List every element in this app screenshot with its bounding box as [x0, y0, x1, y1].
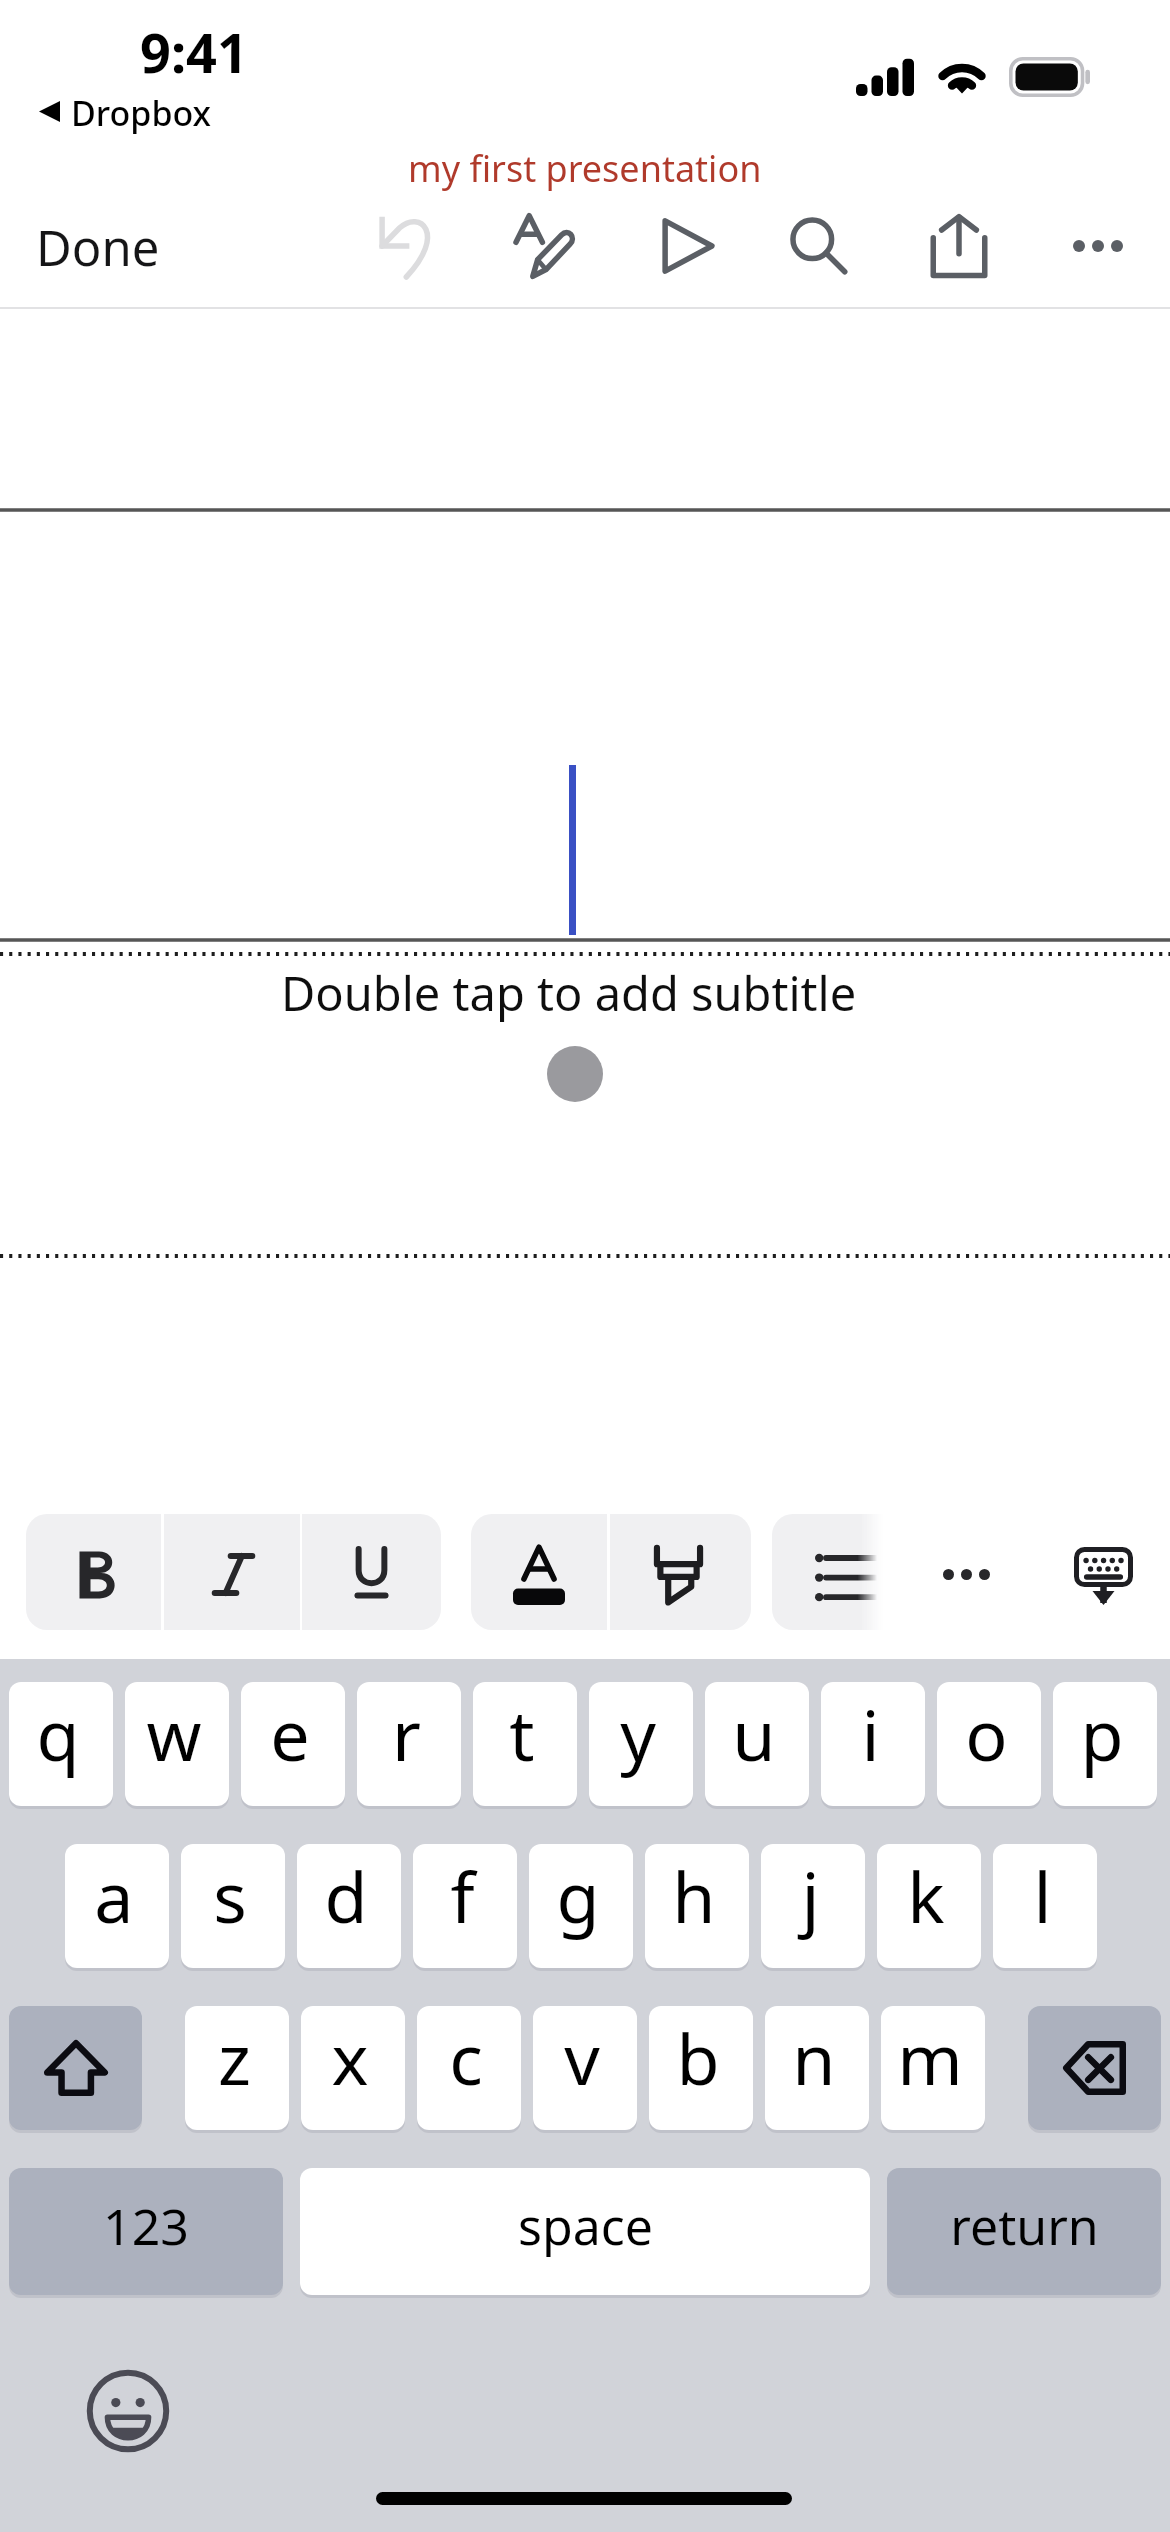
staticText: e	[270, 1686, 310, 1781]
button[interactable]: Shift	[9, 2006, 142, 2130]
button[interactable]: l	[993, 1844, 1097, 1968]
staticText: c	[449, 2010, 483, 2105]
button[interactable]: d	[297, 1844, 401, 1968]
button[interactable]: Underline	[302, 1514, 441, 1630]
staticText: m	[897, 2010, 963, 2105]
button[interactable]: g	[529, 1844, 633, 1968]
button[interactable]: i	[821, 1682, 925, 1806]
staticText: q	[36, 1686, 80, 1781]
staticText: x	[331, 2010, 369, 2105]
staticText: u	[732, 1686, 776, 1781]
staticText: w	[146, 1686, 202, 1781]
staticText: t	[509, 1686, 535, 1781]
button[interactable]: Done	[36, 206, 166, 288]
button[interactable]: Double tap to add subtitle	[281, 961, 857, 1025]
staticText: r	[392, 1686, 421, 1781]
staticText: Done	[36, 214, 160, 281]
button[interactable]: u	[705, 1682, 809, 1806]
staticText: z	[218, 2010, 251, 2105]
button[interactable]: More formatting	[916, 1514, 1018, 1630]
staticText: a	[94, 1848, 134, 1943]
button[interactable]: z	[185, 2006, 289, 2130]
button[interactable]: t	[473, 1682, 577, 1806]
staticText: g	[556, 1848, 600, 1943]
button[interactable]: p	[1053, 1682, 1157, 1806]
button[interactable]: Edit text	[502, 202, 590, 290]
button[interactable]: f	[413, 1844, 517, 1968]
button[interactable]: r	[357, 1682, 461, 1806]
button[interactable]: b	[649, 2006, 753, 2130]
button[interactable]: Emoji keyboard	[78, 2361, 178, 2461]
staticText: n	[792, 2010, 836, 2105]
button[interactable]: Bulleted list	[772, 1514, 883, 1630]
button[interactable]: Undo	[366, 202, 454, 290]
button[interactable]: More options	[1054, 202, 1142, 290]
staticText: p	[1080, 1686, 1124, 1781]
button[interactable]: v	[533, 2006, 637, 2130]
staticText: Dropbox	[71, 90, 212, 136]
button[interactable]: a	[65, 1844, 169, 1968]
staticText: h	[672, 1848, 716, 1943]
staticText: d	[324, 1848, 368, 1943]
button[interactable]: c	[417, 2006, 521, 2130]
staticText: space	[518, 2192, 653, 2260]
staticText: y	[620, 1686, 656, 1781]
button[interactable]: n	[765, 2006, 869, 2130]
button[interactable]: k	[877, 1844, 981, 1968]
button[interactable]: 123	[9, 2168, 283, 2295]
button[interactable]: x	[301, 2006, 405, 2130]
button[interactable]: Dropbox	[26, 85, 236, 141]
button[interactable]: o	[937, 1682, 1041, 1806]
staticText: my first presentation	[408, 144, 762, 193]
button[interactable]: e	[241, 1682, 345, 1806]
button[interactable]: m	[881, 2006, 985, 2130]
staticText: o	[965, 1686, 1008, 1781]
button[interactable]: space	[300, 2168, 870, 2295]
button[interactable]: q	[9, 1682, 113, 1806]
staticText: k	[907, 1848, 945, 1943]
staticText: return	[950, 2192, 1099, 2260]
staticText: s	[213, 1848, 247, 1943]
button[interactable]: Highlight	[610, 1514, 751, 1630]
staticText: 123	[103, 2192, 189, 2260]
button[interactable]: Share	[915, 202, 1003, 290]
button[interactable]: y	[589, 1682, 693, 1806]
button[interactable]: Backspace	[1028, 2006, 1161, 2130]
button[interactable]: w	[125, 1682, 229, 1806]
button[interactable]: Italic	[164, 1514, 300, 1630]
button[interactable]: Play slideshow	[644, 202, 732, 290]
button[interactable]: Bold	[26, 1514, 161, 1630]
button[interactable]: h	[645, 1844, 749, 1968]
staticText: j	[801, 1848, 820, 1943]
button[interactable]: Search	[775, 202, 863, 290]
staticText: f	[450, 1848, 475, 1943]
button[interactable]: j	[761, 1844, 865, 1968]
staticText: i	[861, 1686, 880, 1781]
staticText: 9:41	[140, 15, 248, 89]
staticText: b	[676, 2010, 720, 2105]
button[interactable]: return	[887, 2168, 1161, 2295]
staticText: l	[1033, 1848, 1052, 1943]
button[interactable]: s	[181, 1844, 285, 1968]
button[interactable]: Text colour	[471, 1514, 607, 1630]
staticText: v	[564, 2010, 600, 2105]
button[interactable]: Hide keyboard	[1046, 1514, 1162, 1630]
